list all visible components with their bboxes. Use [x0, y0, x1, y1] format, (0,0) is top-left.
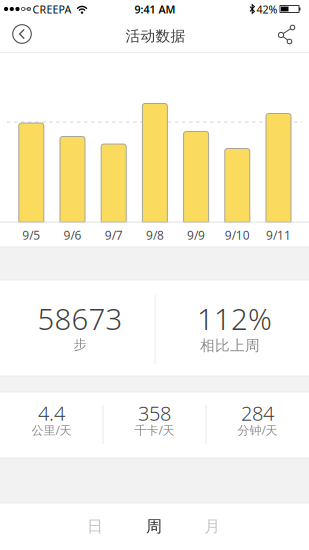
staticText: 周 — [146, 517, 162, 536]
staticText: 58673 — [37, 299, 122, 338]
staticText: 358 — [138, 400, 171, 426]
staticText: 112% — [197, 299, 272, 338]
staticText: 9/9 — [187, 227, 205, 243]
button[interactable]: 日 — [73, 506, 117, 546]
staticText: 9/11 — [266, 227, 291, 243]
staticText: 月 — [204, 517, 220, 536]
staticText: 9/5 — [22, 227, 40, 243]
staticText: 日 — [87, 517, 103, 536]
button[interactable]: Back — [7, 19, 37, 49]
staticText: 284 — [241, 400, 274, 426]
staticText: 步 — [73, 336, 86, 353]
staticText: 9/7 — [105, 227, 123, 243]
button[interactable]: 月 — [190, 506, 234, 546]
button[interactable]: Share — [269, 19, 301, 51]
staticText: 9/8 — [146, 227, 164, 243]
staticText: 9/10 — [225, 227, 250, 243]
staticText: 9:41 AM — [134, 2, 175, 16]
staticText: 9/6 — [63, 227, 81, 243]
staticText: 活动数据 — [125, 27, 185, 45]
staticText: 相比上周 — [200, 336, 260, 354]
staticText: 公里/天 — [31, 422, 71, 438]
staticText: 4.4 — [38, 400, 65, 426]
staticText: 千卡/天 — [134, 422, 174, 438]
button[interactable]: 周 — [132, 506, 176, 546]
staticText: CREEPA — [32, 2, 71, 16]
staticText: 分钟/天 — [237, 422, 277, 438]
staticText: 42% — [256, 2, 277, 16]
